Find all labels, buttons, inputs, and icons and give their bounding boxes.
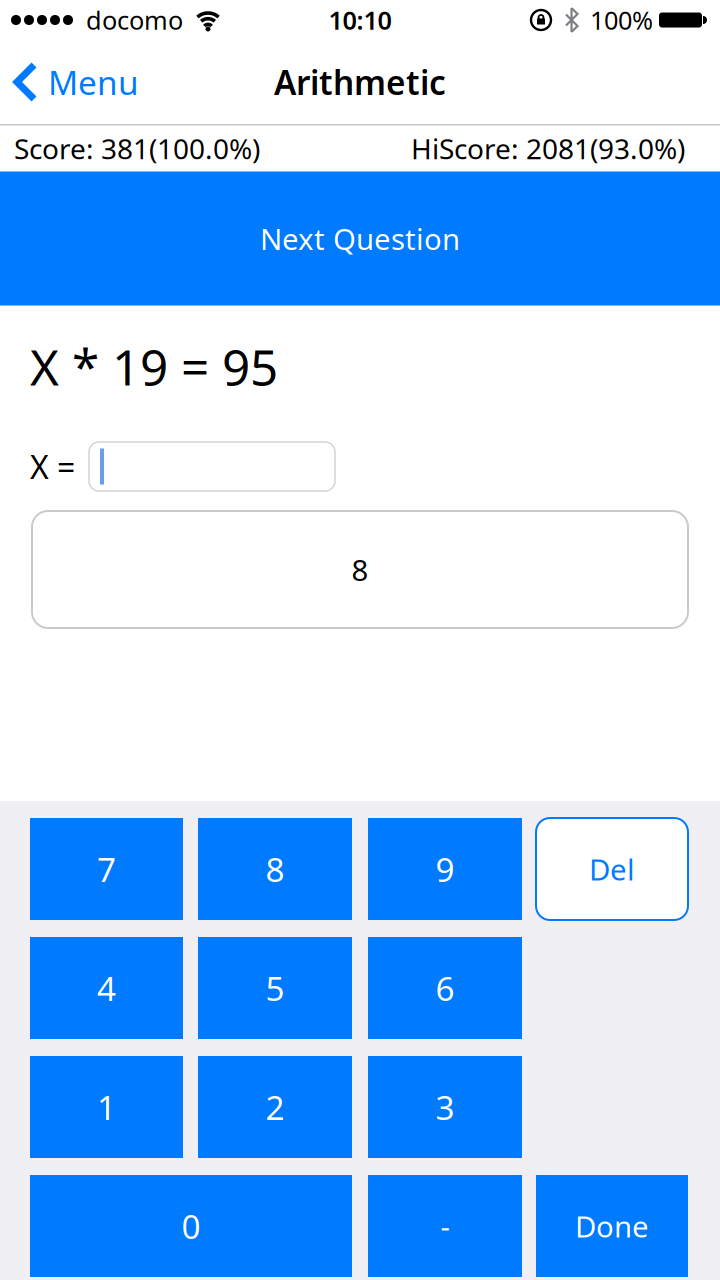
staticText: 8 xyxy=(265,847,284,891)
button[interactable]: Menu xyxy=(0,60,139,104)
button[interactable]: 8 xyxy=(32,511,688,628)
button[interactable]: - xyxy=(368,1175,522,1277)
staticText: 7 xyxy=(97,847,116,891)
staticText: 6 xyxy=(435,966,454,1010)
staticText: Menu xyxy=(48,60,139,104)
button[interactable]: 3 xyxy=(368,1056,522,1158)
button[interactable]: 4 xyxy=(30,937,183,1039)
button[interactable]: Done xyxy=(536,1175,688,1277)
staticText: Done xyxy=(575,1206,649,1245)
button[interactable]: 8 xyxy=(198,818,352,920)
staticText: HiScore: 2081(93.0%) xyxy=(411,130,685,167)
staticText: 10:10 xyxy=(328,3,391,37)
staticText: 2 xyxy=(265,1085,284,1129)
staticText: 0 xyxy=(181,1204,200,1248)
button[interactable]: 9 xyxy=(368,818,522,920)
staticText: Score: 381(100.0%) xyxy=(14,130,260,167)
staticText: 1 xyxy=(97,1085,116,1129)
button[interactable]: Next Question xyxy=(0,171,720,305)
staticText: Arithmetic xyxy=(274,60,446,104)
staticText: 100% xyxy=(590,3,653,37)
staticText: 3 xyxy=(435,1085,454,1129)
button[interactable]: 0 xyxy=(30,1175,352,1277)
staticText: 9 xyxy=(435,847,454,891)
button[interactable]: Del xyxy=(536,818,688,920)
staticText: docomo xyxy=(86,3,183,37)
button[interactable]: 2 xyxy=(198,1056,352,1158)
staticText: Del xyxy=(589,849,635,888)
staticText: X * 19 = 95 xyxy=(30,333,278,399)
staticText: - xyxy=(440,1206,449,1245)
staticText: 4 xyxy=(97,966,116,1010)
button[interactable]: 6 xyxy=(368,937,522,1039)
button[interactable]: 7 xyxy=(30,818,183,920)
staticText: 5 xyxy=(265,966,284,1010)
button[interactable]: 1 xyxy=(30,1056,183,1158)
staticText: 8 xyxy=(351,550,368,589)
button[interactable]: 5 xyxy=(198,937,352,1039)
staticText: Next Question xyxy=(260,219,460,258)
staticText: X = xyxy=(30,445,75,488)
